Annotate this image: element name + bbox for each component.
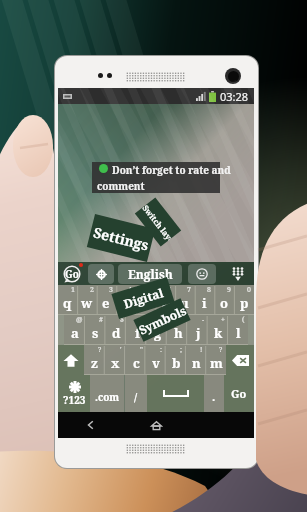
button[interactable]: +: [208, 315, 228, 345]
button[interactable]: ;: [166, 345, 186, 375]
staticText: m: [210, 354, 223, 372]
staticText: t: [141, 294, 147, 312]
staticText: English: [128, 266, 173, 282]
button[interactable]: -: [188, 315, 208, 345]
button[interactable]: ": [126, 345, 146, 375]
staticText: z: [91, 354, 98, 372]
staticText: +: [221, 315, 225, 325]
staticText: Symbols: [136, 302, 189, 338]
button[interactable]: Switch layout: [135, 197, 181, 246]
button[interactable]: %: [127, 315, 148, 345]
button[interactable]: .com: [90, 375, 124, 412]
staticText: @: [76, 315, 83, 325]
staticText: j: [196, 324, 201, 342]
button[interactable]: ?: [84, 345, 105, 375]
button[interactable]: Don’t forget to rate and: [92, 162, 220, 193]
button[interactable]: Home: [124, 412, 189, 438]
staticText: %: [139, 315, 146, 325]
staticText: s: [92, 324, 99, 342]
button[interactable]: !: [186, 345, 206, 375]
button[interactable]: Symbols: [133, 298, 191, 342]
staticText: e: [102, 294, 110, 312]
button[interactable]: Back: [58, 412, 124, 438]
button[interactable]: .: [204, 375, 224, 412]
staticText: 03:28: [220, 89, 249, 104]
staticText: c: [133, 354, 140, 372]
button[interactable]: Emoji: [188, 264, 216, 284]
button[interactable]: GO Keyboard menu: [62, 264, 82, 284]
button[interactable]: 4: [115, 285, 134, 315]
staticText: /: [134, 389, 138, 404]
staticText: 0: [247, 285, 251, 295]
staticText: l: [236, 324, 241, 342]
button[interactable]: Shift: [58, 345, 84, 375]
staticText: #: [99, 315, 103, 325]
staticText: :: [160, 345, 163, 355]
button[interactable]: Hide keyboard: [226, 263, 250, 284]
button[interactable]: ': [105, 345, 126, 375]
staticText: Settings: [91, 222, 151, 255]
button[interactable]: 8: [194, 285, 214, 315]
button[interactable]: Settings: [87, 214, 155, 262]
button[interactable]: 1: [58, 285, 77, 315]
staticText: p: [240, 294, 249, 312]
button[interactable]: Go: [224, 375, 254, 412]
staticText: Go: [65, 267, 79, 281]
button[interactable]: 6: [154, 285, 174, 315]
staticText: k: [214, 324, 223, 342]
button[interactable]: 9: [214, 285, 234, 315]
button[interactable]: Theme: [88, 264, 114, 284]
staticText: ;: [180, 345, 183, 355]
staticText: b: [172, 354, 181, 372]
button[interactable]: #: [85, 315, 106, 345]
button[interactable]: /: [125, 375, 147, 412]
staticText: 4: [128, 285, 132, 295]
button[interactable]: English: [118, 264, 182, 284]
staticText: ?: [219, 345, 223, 355]
button[interactable]: 7: [174, 285, 194, 315]
staticText: h: [174, 324, 183, 342]
staticText: .com: [95, 390, 120, 404]
button[interactable]: 5: [134, 285, 154, 315]
button[interactable]: Backspace: [226, 345, 254, 375]
staticText: Go: [231, 386, 247, 401]
button[interactable]: 2: [77, 285, 96, 315]
staticText: g: [154, 324, 162, 342]
staticText: a: [71, 324, 79, 342]
staticText: 3: [109, 285, 113, 295]
button[interactable]: $: [106, 315, 127, 345]
staticText: 9: [227, 285, 231, 295]
staticText: q: [63, 294, 72, 312]
button[interactable]: Space: [147, 375, 204, 412]
staticText: *: [181, 315, 185, 325]
button[interactable]: ?: [206, 345, 226, 375]
button[interactable]: *: [168, 315, 188, 345]
staticText: $: [120, 315, 124, 325]
staticText: (: [242, 315, 245, 325]
staticText: n: [192, 354, 201, 372]
staticText: ': [120, 345, 122, 355]
staticText: comment: [97, 179, 145, 193]
button[interactable]: Digital: [111, 277, 175, 319]
button[interactable]: 3: [96, 285, 115, 315]
staticText: Don’t forget to rate and: [112, 163, 231, 177]
button[interactable]: (: [228, 315, 248, 345]
staticText: x: [111, 354, 120, 372]
button[interactable]: :: [146, 345, 166, 375]
button[interactable]: &: [148, 315, 168, 345]
staticText: Switch layout: [140, 202, 175, 242]
staticText: d: [112, 324, 121, 342]
staticText: v: [152, 354, 160, 372]
staticText: ?123: [63, 393, 86, 407]
staticText: u: [180, 294, 189, 312]
button[interactable]: 0: [234, 285, 254, 315]
staticText: 7: [187, 285, 191, 295]
button[interactable]: @: [64, 315, 85, 345]
staticText: w: [81, 294, 93, 312]
staticText: 2: [90, 285, 94, 295]
button[interactable]: Symbols: [58, 375, 90, 412]
staticText: 6: [167, 285, 171, 295]
staticText: -: [202, 315, 205, 325]
staticText: .: [212, 389, 216, 404]
staticText: ?: [98, 345, 102, 355]
